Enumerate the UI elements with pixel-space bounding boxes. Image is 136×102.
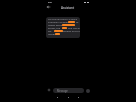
button[interactable]: Recent apps [74, 93, 82, 101]
staticText: earlier, the [48, 26, 61, 29]
staticText: summary of what we [48, 20, 73, 23]
button[interactable]: Voice input [86, 89, 90, 93]
staticText: agreed on for the [63, 29, 80, 32]
staticText: Assistant [61, 6, 75, 10]
button[interactable]: Message [53, 88, 84, 93]
button[interactable]: Add attachment [47, 88, 50, 91]
staticText: we [48, 29, 52, 32]
staticText: 9:41 [48, 1, 53, 4]
button[interactable]: Home [64, 93, 72, 101]
button[interactable]: Of course! Here is a quick [46, 17, 80, 38]
staticText: and the steps [68, 26, 80, 29]
button[interactable]: Back [53, 93, 61, 101]
staticText: design [48, 32, 56, 35]
staticText: Of course! Here is a quick [48, 17, 78, 20]
button[interactable]: Back [46, 4, 51, 9]
staticText: talked about [48, 23, 63, 26]
staticText: of [76, 20, 79, 23]
staticText: Message [57, 89, 68, 93]
